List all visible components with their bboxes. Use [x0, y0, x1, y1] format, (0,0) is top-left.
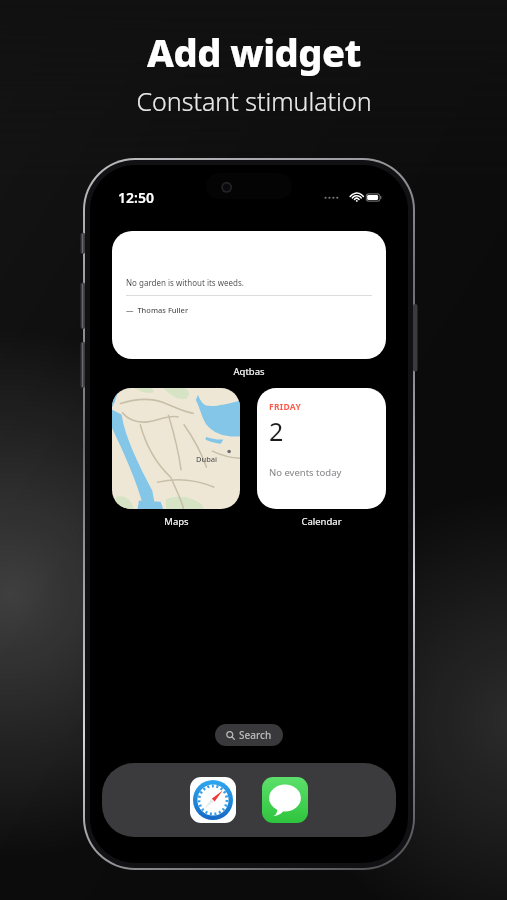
staticText: Dubai — [196, 454, 218, 464]
staticText: Constant stimulation — [136, 84, 372, 118]
button[interactable]: No garden is without its weeds. — [112, 231, 386, 359]
staticText: Add widget — [147, 26, 361, 78]
staticText: No garden is without its weeds. — [126, 277, 244, 288]
button[interactable]: Messages — [262, 777, 308, 823]
staticText: No events today — [269, 466, 342, 479]
button[interactable]: Search — [215, 724, 283, 746]
staticText: Calendar — [301, 515, 342, 528]
button[interactable]: Safari — [190, 777, 236, 823]
button[interactable]: FRIDAY — [257, 388, 386, 509]
staticText: FRIDAY — [269, 401, 302, 413]
staticText: 12:50 — [118, 188, 154, 207]
staticText: Aqtbas — [112, 365, 386, 378]
staticText: — Thomas Fuller — [126, 305, 189, 315]
staticText: 2 — [269, 414, 284, 448]
staticText: Search — [239, 728, 272, 742]
staticText: Maps — [164, 515, 189, 528]
button[interactable]: Maps widget — [112, 388, 240, 509]
